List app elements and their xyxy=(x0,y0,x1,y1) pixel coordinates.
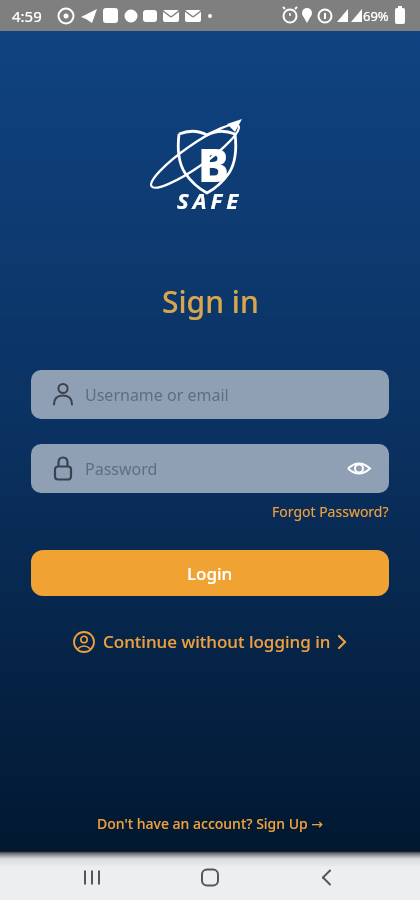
button[interactable]: Don't have an account? Sign Up → xyxy=(97,814,324,833)
staticText: Don't have an account? Sign Up → xyxy=(97,814,324,833)
staticText: SAFE xyxy=(177,185,243,215)
staticText: Login xyxy=(187,562,233,585)
staticText: 69% xyxy=(363,7,389,25)
staticText: Continue without logging in xyxy=(103,630,331,653)
staticText: 4:59 xyxy=(12,6,42,26)
button[interactable] xyxy=(140,851,280,900)
staticText: Forgot Password? xyxy=(272,502,389,521)
staticText: Password xyxy=(85,458,158,480)
button[interactable] xyxy=(280,851,420,900)
button[interactable]: Username or email xyxy=(31,370,389,419)
button[interactable]: Forgot Password? xyxy=(272,502,389,521)
staticText: Username or email xyxy=(85,384,229,406)
staticText: B xyxy=(198,133,229,196)
button[interactable]: Continue without logging in xyxy=(73,630,347,653)
button[interactable] xyxy=(0,851,140,900)
button[interactable]: Password xyxy=(31,444,389,493)
button[interactable]: Login xyxy=(31,550,389,596)
staticText: Sign in xyxy=(162,281,259,322)
